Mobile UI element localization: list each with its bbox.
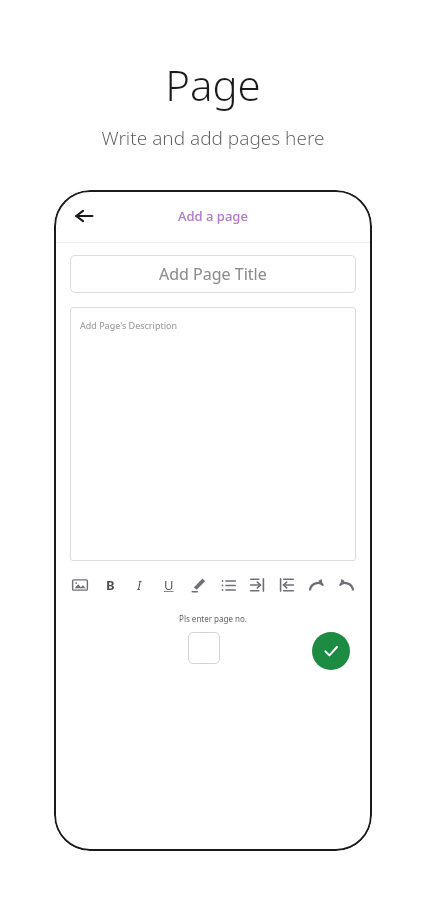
button[interactable]: Bullet list [218, 575, 238, 595]
button[interactable]: Add Page Title [70, 255, 356, 293]
staticText: B [106, 576, 115, 594]
button[interactable]: Confirm [312, 632, 350, 670]
staticText: Page [165, 56, 261, 113]
staticText: Write and add pages here [101, 125, 325, 151]
button[interactable]: Italic [129, 575, 149, 595]
button[interactable]: Highlight [188, 575, 208, 595]
button[interactable]: Redo [306, 575, 326, 595]
staticText: Add Page's Description [80, 319, 178, 331]
button[interactable]: Insert image [70, 575, 90, 595]
button[interactable]: Undo [336, 575, 356, 595]
staticText: Add Page Title [159, 263, 267, 285]
button[interactable]: Outdent [277, 575, 297, 595]
staticText: Pls enter page no. [54, 613, 372, 624]
button[interactable]: Bold [100, 575, 120, 595]
button[interactable]: Underline [159, 575, 179, 595]
button[interactable]: Add Page's Description [70, 307, 356, 561]
button[interactable]: Back [66, 198, 102, 234]
button[interactable]: Page number [188, 632, 220, 664]
staticText: Add a page [178, 207, 248, 225]
staticText: U [164, 576, 174, 594]
button[interactable]: Indent [247, 575, 267, 595]
staticText: I [137, 576, 142, 594]
